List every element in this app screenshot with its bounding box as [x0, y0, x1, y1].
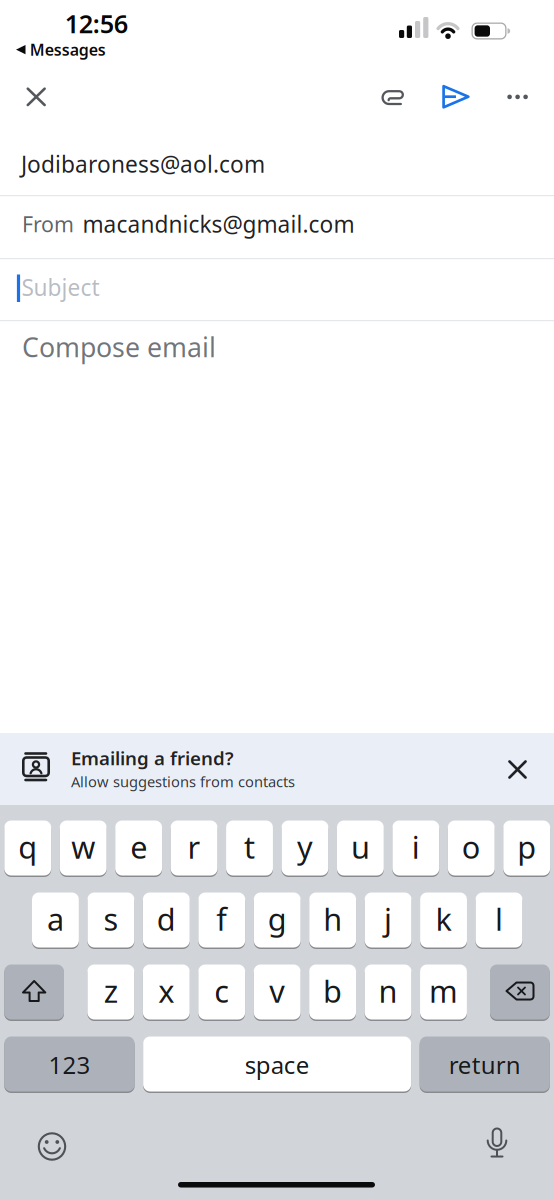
staticText: i	[412, 826, 420, 867]
staticText: From	[22, 210, 74, 238]
staticText: f	[216, 898, 227, 939]
button[interactable]: space	[143, 1036, 411, 1093]
staticText: p	[517, 826, 536, 867]
staticText: c	[214, 970, 229, 1011]
button[interactable]: Dictate	[475, 1122, 519, 1166]
button[interactable]: Close	[14, 75, 58, 119]
staticText: n	[379, 970, 398, 1011]
staticText: o	[462, 826, 481, 867]
button[interactable]: Compose email	[0, 321, 554, 373]
staticText: 123	[48, 1049, 90, 1081]
button[interactable]: return	[420, 1036, 550, 1093]
button[interactable]: i	[392, 820, 439, 877]
button[interactable]: Emoji	[30, 1124, 74, 1168]
button[interactable]: a	[32, 892, 79, 949]
button[interactable]: From	[0, 196, 554, 252]
button[interactable]: d	[143, 892, 190, 949]
button[interactable]: h	[309, 892, 356, 949]
button[interactable]: g	[254, 892, 301, 949]
staticText: l	[495, 898, 503, 939]
staticText: t	[244, 826, 255, 867]
staticText: v	[269, 970, 285, 1011]
button[interactable]: 123	[4, 1036, 135, 1093]
button[interactable]: x	[143, 964, 190, 1021]
staticText: k	[435, 898, 451, 939]
staticText: a	[47, 898, 64, 939]
staticText: e	[130, 826, 147, 867]
staticText: space	[245, 1049, 310, 1081]
button[interactable]: Shift	[4, 964, 64, 1021]
button[interactable]: Back to Messages	[15, 39, 106, 60]
staticText: Subject	[21, 272, 99, 302]
staticText: r	[188, 826, 201, 867]
button[interactable]: More options	[496, 75, 540, 119]
staticText: return	[449, 1049, 521, 1081]
staticText: z	[104, 970, 118, 1011]
staticText: Allow suggestions from contacts	[71, 772, 295, 791]
button[interactable]: z	[87, 964, 134, 1021]
button[interactable]: t	[226, 820, 273, 877]
button[interactable]: Delete	[490, 964, 550, 1021]
button[interactable]: o	[448, 820, 495, 877]
staticText: Compose email	[22, 329, 216, 365]
button[interactable]: p	[503, 820, 550, 877]
button[interactable]: Send	[433, 75, 477, 119]
staticText: Messages	[30, 39, 106, 60]
staticText: y	[297, 826, 313, 867]
staticText: q	[18, 826, 37, 867]
button[interactable]: c	[198, 964, 245, 1021]
button[interactable]: Jodibaroness@aol.com	[0, 133, 554, 195]
staticText: h	[323, 898, 342, 939]
button[interactable]: e	[115, 820, 162, 877]
button[interactable]: b	[309, 964, 356, 1021]
button[interactable]: l	[475, 892, 522, 949]
staticText: m	[429, 970, 458, 1011]
button[interactable]: w	[60, 820, 107, 877]
staticText: g	[268, 898, 287, 939]
staticText: x	[158, 970, 174, 1011]
button[interactable]: Dismiss	[495, 747, 539, 791]
staticText: j	[384, 898, 392, 939]
button[interactable]: j	[365, 892, 411, 949]
staticText: w	[71, 826, 95, 867]
button[interactable]: Attach file	[372, 76, 416, 120]
button[interactable]: n	[365, 964, 411, 1021]
button[interactable]: Subject	[0, 259, 554, 320]
button[interactable]: q	[4, 820, 51, 877]
button[interactable]: v	[254, 964, 301, 1021]
button[interactable]: u	[337, 820, 384, 877]
staticText: u	[351, 826, 370, 867]
staticText: macandnicks@gmail.com	[82, 209, 354, 239]
staticText: Jodibaroness@aol.com	[21, 149, 265, 179]
staticText: Emailing a friend?	[71, 746, 234, 770]
button[interactable]: r	[171, 820, 217, 877]
button[interactable]: f	[198, 892, 245, 949]
button[interactable]: m	[420, 964, 467, 1021]
button[interactable]: y	[281, 820, 328, 877]
staticText: 12:56	[65, 7, 128, 40]
button[interactable]: s	[87, 892, 134, 949]
staticText: b	[323, 970, 342, 1011]
staticText: d	[157, 898, 176, 939]
button[interactable]: k	[420, 892, 467, 949]
staticText: s	[103, 898, 118, 939]
